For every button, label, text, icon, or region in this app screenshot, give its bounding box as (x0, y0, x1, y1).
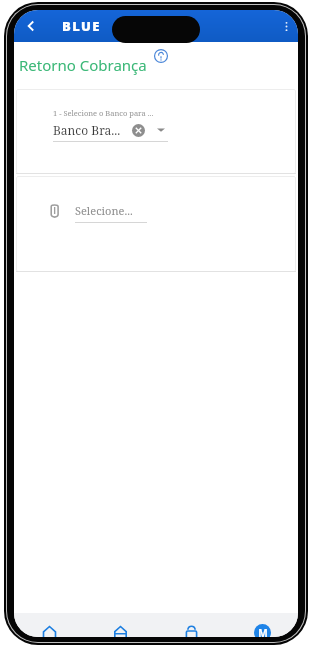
staticText: 1 - Selecione o Banco para ... (53, 108, 154, 118)
staticText: Banco Bra... (53, 122, 121, 138)
button[interactable]: Attach file (46, 203, 296, 223)
button[interactable]: Security (156, 613, 227, 637)
staticText: Retorno Cobrança (19, 55, 147, 75)
staticText: M (258, 626, 268, 637)
button[interactable]: Profile (227, 613, 298, 637)
staticText: BLUE (62, 17, 101, 35)
button[interactable]: Store (85, 613, 156, 637)
button[interactable]: BLUE (62, 17, 101, 35)
button[interactable]: Clear (131, 123, 145, 137)
button[interactable]: Back (18, 13, 44, 39)
staticText: Selecione... (75, 203, 133, 218)
button[interactable]: Home (14, 613, 85, 637)
other: Attach file (46, 203, 62, 219)
button[interactable]: Banco Bra... (53, 122, 167, 138)
button[interactable]: Open dropdown (155, 124, 167, 136)
button[interactable]: More options (275, 15, 297, 37)
button[interactable]: Help (152, 47, 170, 65)
